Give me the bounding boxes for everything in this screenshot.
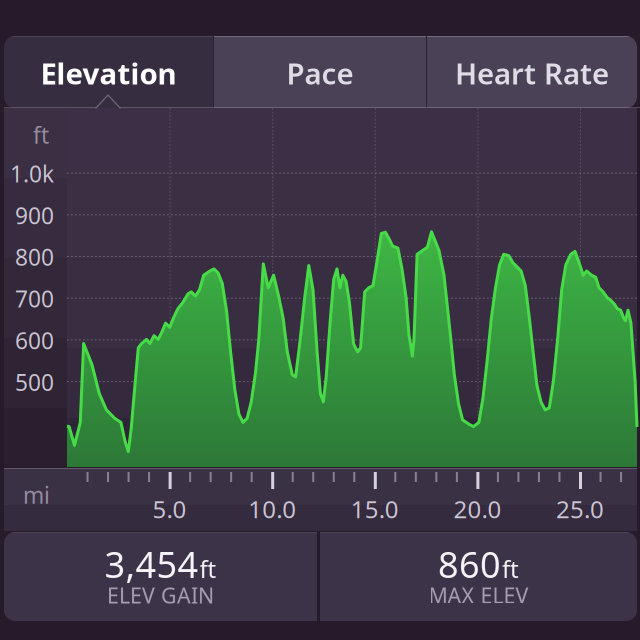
staticText: 700 bbox=[15, 284, 54, 314]
button[interactable]: Pace bbox=[214, 36, 426, 108]
staticText: mi bbox=[23, 480, 50, 510]
staticText: 860 bbox=[438, 540, 501, 588]
staticText: 600 bbox=[15, 325, 54, 355]
staticText: 5.0 bbox=[153, 493, 187, 525]
button[interactable]: 3,454 bbox=[4, 532, 317, 621]
staticText: Elevation bbox=[40, 53, 176, 92]
button[interactable]: 860 bbox=[320, 532, 637, 621]
button[interactable]: Heart Rate bbox=[427, 36, 637, 108]
staticText: 10.0 bbox=[248, 493, 296, 525]
staticText: ft bbox=[502, 553, 519, 585]
staticText: 25.0 bbox=[556, 493, 604, 525]
staticText: Heart Rate bbox=[455, 53, 609, 92]
staticText: 20.0 bbox=[453, 493, 501, 525]
staticText: ft bbox=[33, 120, 49, 150]
staticText: 1.0k bbox=[10, 159, 54, 189]
staticText: ELEV GAIN bbox=[107, 581, 214, 609]
staticText: 800 bbox=[15, 242, 54, 272]
staticText: ft bbox=[199, 553, 216, 585]
staticText: MAX ELEV bbox=[428, 581, 528, 609]
staticText: 900 bbox=[15, 200, 54, 230]
staticText: 3,454 bbox=[104, 540, 198, 588]
staticText: 15.0 bbox=[351, 493, 399, 525]
staticText: Pace bbox=[286, 53, 353, 92]
button[interactable]: Elevation bbox=[4, 36, 213, 108]
staticText: 500 bbox=[15, 367, 54, 397]
